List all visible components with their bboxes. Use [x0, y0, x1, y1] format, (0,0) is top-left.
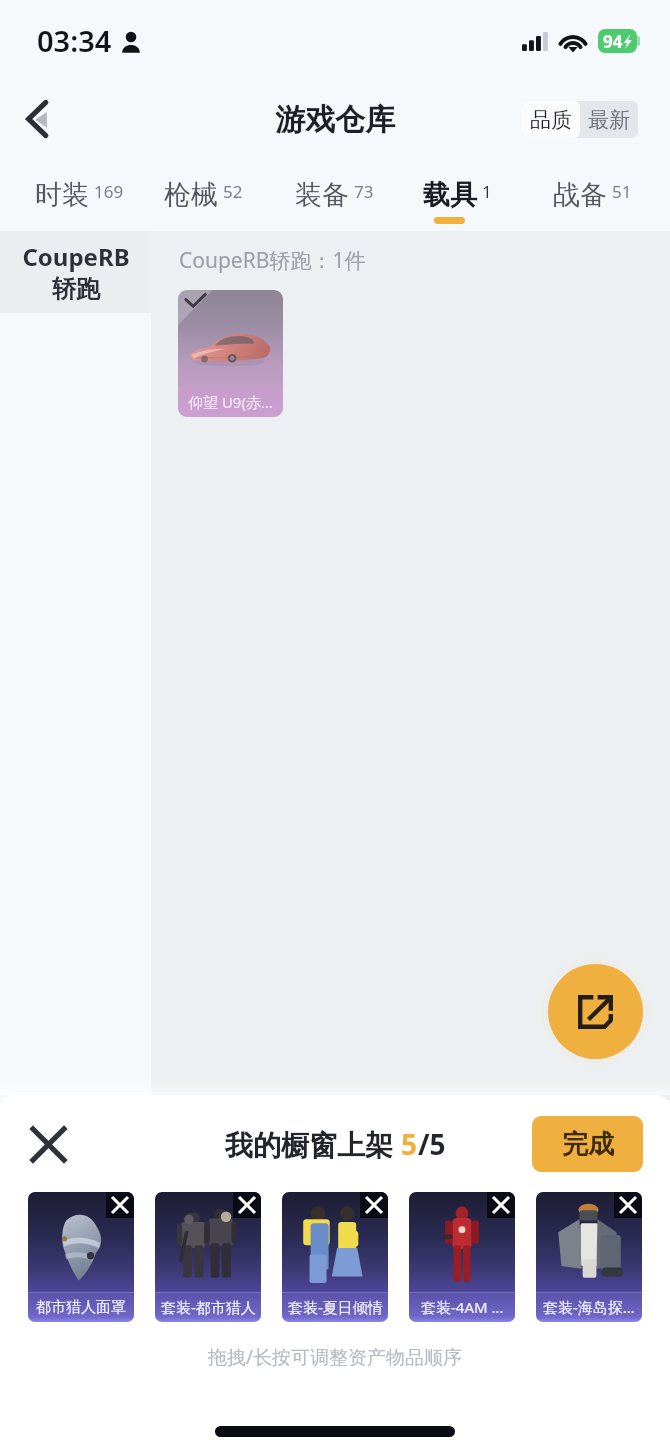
- staticText: CoupeRB 轿跑: [22, 240, 130, 304]
- button[interactable]: Remove item: [487, 1192, 515, 1218]
- button[interactable]: 载具: [399, 158, 527, 231]
- button[interactable]: Remove item: [106, 1192, 134, 1218]
- staticText: CoupeRB轿跑：1件: [179, 246, 366, 275]
- button[interactable]: 装备: [271, 158, 399, 231]
- staticText: 套装-夏日倾情: [288, 1297, 383, 1317]
- staticText: 51: [612, 180, 632, 203]
- button[interactable]: Remove item: [360, 1192, 388, 1218]
- button[interactable]: 仰望 U9(赤…: [178, 290, 283, 417]
- staticText: 套装-都市猎人: [161, 1297, 256, 1317]
- staticText: 169: [94, 180, 124, 203]
- staticText: 完成: [562, 1128, 614, 1161]
- staticText: /5: [418, 1125, 446, 1163]
- button[interactable]: 枪械: [143, 158, 271, 231]
- staticText: 战备: [553, 178, 607, 212]
- button[interactable]: Close: [22, 1118, 74, 1170]
- staticText: 03:34: [37, 21, 112, 60]
- staticText: 游戏仓库: [275, 101, 395, 139]
- button[interactable]: 套装-海岛探…: [536, 1192, 642, 1322]
- staticText: 枪械: [164, 178, 218, 212]
- button[interactable]: 完成: [532, 1116, 643, 1172]
- staticText: 品质: [530, 107, 572, 133]
- staticText: 装备: [295, 178, 349, 212]
- staticText: 52: [223, 180, 243, 203]
- staticText: 仰望 U9(赤…: [188, 392, 273, 412]
- staticText: 最新: [588, 107, 630, 133]
- button[interactable]: Remove item: [233, 1192, 261, 1218]
- button[interactable]: Back: [11, 93, 63, 145]
- button[interactable]: 品质: [522, 101, 580, 138]
- staticText: 套装-4AM …: [421, 1297, 504, 1317]
- button[interactable]: 套装-夏日倾情: [282, 1192, 388, 1322]
- staticText: 时装: [35, 178, 89, 212]
- button[interactable]: CoupeRB 轿跑: [0, 231, 151, 313]
- staticText: 都市猎人面罩: [36, 1298, 126, 1317]
- button[interactable]: 套装-都市猎人: [155, 1192, 261, 1322]
- button[interactable]: 时装: [15, 158, 143, 231]
- button[interactable]: 套装-4AM …: [409, 1192, 515, 1322]
- staticText: 94: [603, 30, 623, 53]
- staticText: 拖拽/长按可调整资产物品顺序: [0, 1344, 670, 1370]
- staticText: 套装-海岛探…: [543, 1297, 635, 1317]
- button[interactable]: Open in new window: [548, 964, 643, 1059]
- button[interactable]: 最新: [580, 101, 638, 138]
- staticText: 我的橱窗上架: [225, 1125, 401, 1163]
- staticText: 73: [354, 180, 374, 203]
- button[interactable]: Remove item: [614, 1192, 642, 1218]
- staticText: 5: [401, 1125, 418, 1163]
- button[interactable]: 战备: [527, 158, 655, 231]
- staticText: 1: [482, 180, 492, 203]
- staticText: 载具: [423, 178, 477, 212]
- button[interactable]: 都市猎人面罩: [28, 1192, 134, 1322]
